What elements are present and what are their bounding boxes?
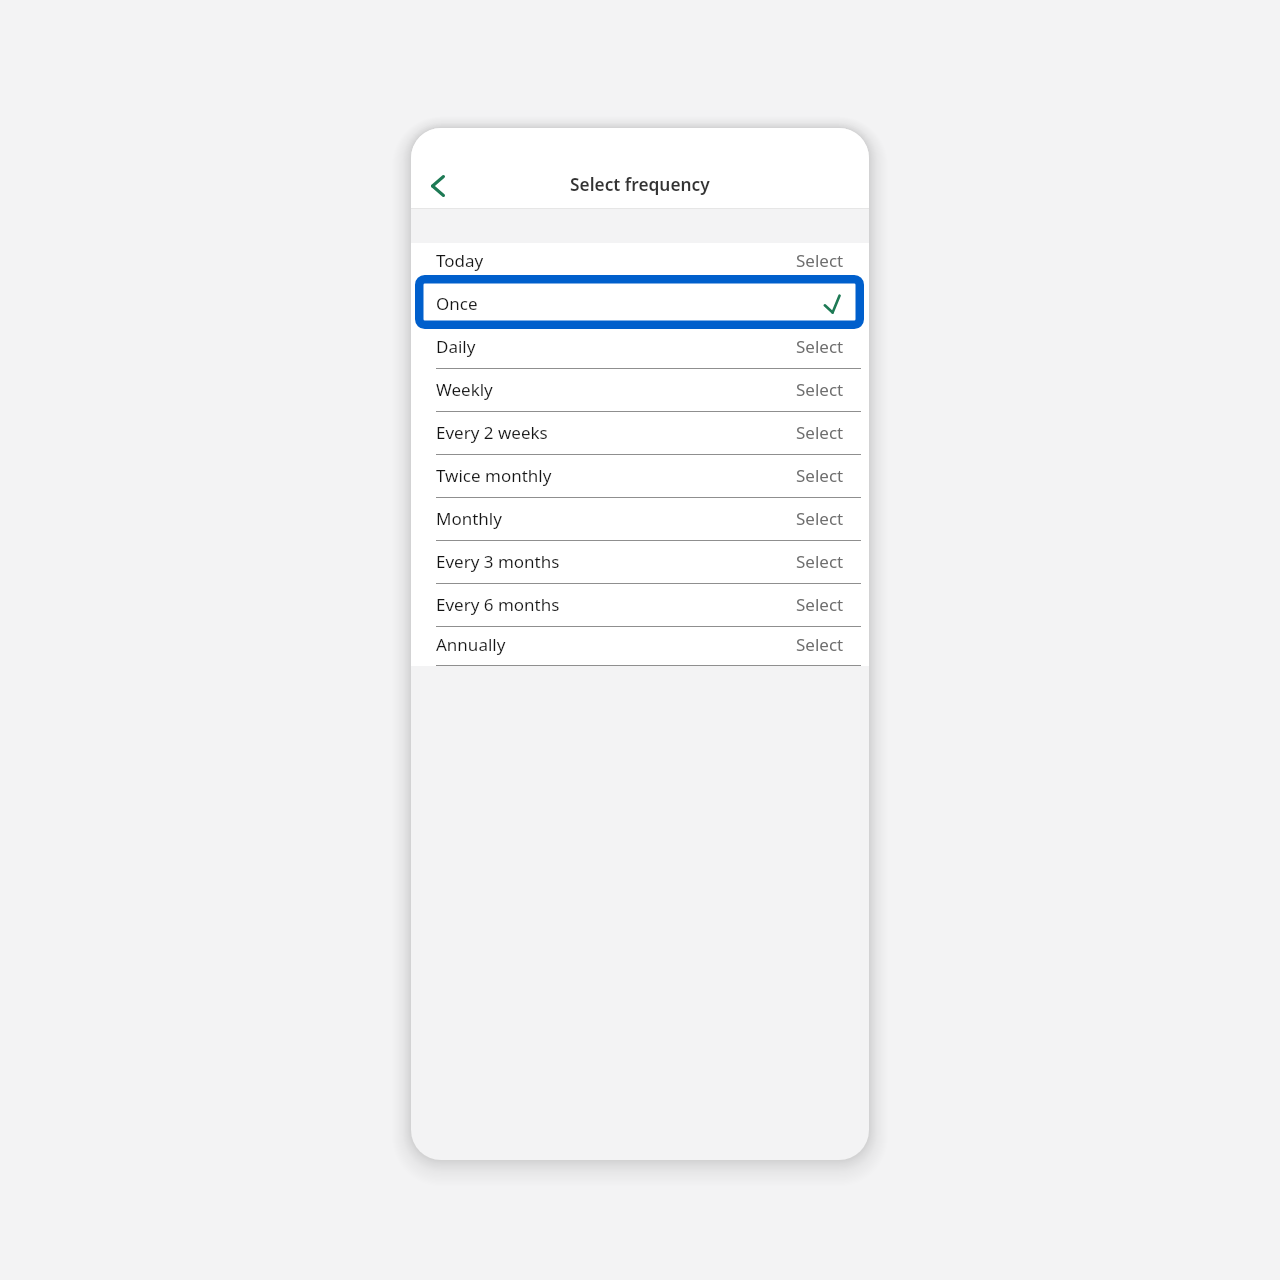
other: Selected — [823, 282, 844, 325]
staticText: Every 6 months — [436, 593, 560, 616]
button[interactable]: Monthly — [411, 497, 869, 540]
staticText: Select — [796, 378, 844, 401]
staticText: Every 2 weeks — [436, 421, 548, 444]
staticText: Select — [796, 593, 844, 616]
staticText: Twice monthly — [436, 464, 552, 487]
button[interactable]: Today — [411, 243, 869, 282]
staticText: Select — [796, 550, 844, 573]
staticText: Select — [796, 464, 844, 487]
staticText: Weekly — [436, 378, 493, 401]
button[interactable]: Annually — [411, 626, 869, 662]
button[interactable]: Back — [417, 165, 459, 207]
staticText: Today — [436, 249, 484, 272]
staticText: Select — [796, 507, 844, 530]
staticText: Annually — [436, 633, 506, 656]
button[interactable]: Every 6 months — [411, 583, 869, 626]
staticText: Select frequency — [570, 173, 710, 197]
staticText: Select — [796, 633, 844, 656]
staticText: Select — [796, 335, 844, 358]
staticText: Monthly — [436, 507, 502, 530]
staticText: Every 3 months — [436, 550, 560, 573]
button[interactable]: Weekly — [411, 368, 869, 411]
staticText: Select — [796, 421, 844, 444]
button[interactable]: Twice monthly — [411, 454, 869, 497]
button[interactable]: Every 3 months — [411, 540, 869, 583]
button[interactable]: Every 2 weeks — [411, 411, 869, 454]
button[interactable]: Daily — [411, 325, 869, 368]
staticText: Daily — [436, 335, 476, 358]
button[interactable]: Once — [411, 282, 869, 325]
staticText: Select — [796, 249, 844, 272]
staticText: Once — [436, 292, 478, 315]
